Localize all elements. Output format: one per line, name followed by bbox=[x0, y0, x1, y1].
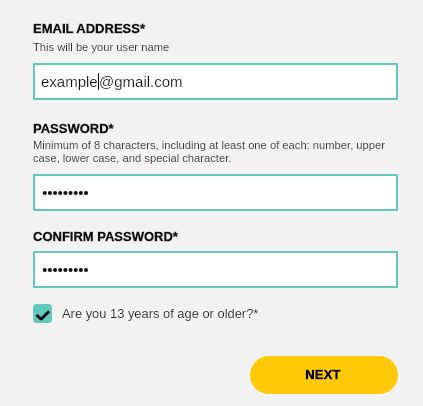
button[interactable]: NEXT bbox=[250, 356, 398, 394]
staticText: example bbox=[41, 73, 98, 90]
staticText: @gmail.com bbox=[99, 73, 183, 90]
other: Age confirmation checkbox bbox=[33, 304, 52, 323]
staticText: EMAIL ADDRESS* bbox=[33, 21, 145, 36]
button[interactable]: Age confirmation checkbox bbox=[33, 304, 249, 323]
staticText: PASSWORD* bbox=[33, 121, 114, 136]
staticText: NEXT bbox=[305, 367, 341, 382]
staticText: This will be your user name bbox=[33, 41, 402, 54]
staticText: CONFIRM PASSWORD* bbox=[33, 229, 178, 244]
staticText: Minimum of 8 characters, including at le… bbox=[33, 139, 402, 165]
button[interactable]: Confirm password field bbox=[33, 251, 398, 288]
button[interactable]: Password field bbox=[33, 174, 398, 211]
button[interactable]: Email address field bbox=[33, 63, 398, 100]
staticText: Are you 13 years of age or older?* bbox=[62, 306, 259, 320]
